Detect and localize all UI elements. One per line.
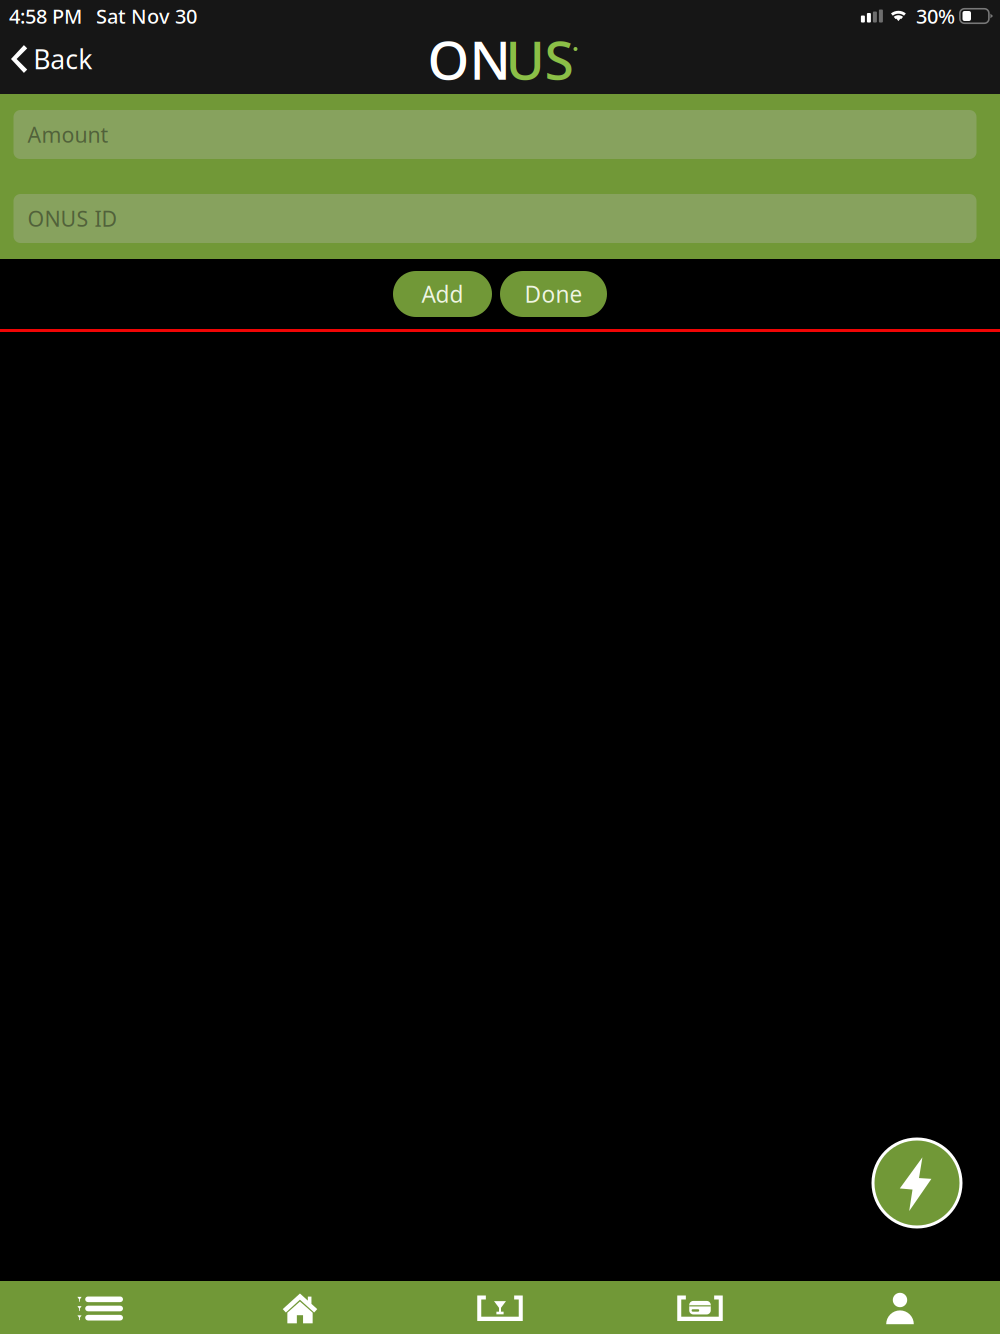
staticText: 30% — [916, 3, 955, 29]
button[interactable]: Drinks — [400, 1281, 600, 1334]
staticText: Add — [421, 279, 463, 309]
button[interactable]: Payments — [600, 1281, 800, 1334]
button[interactable]: Orders — [0, 1281, 200, 1334]
staticText: Done — [524, 279, 582, 309]
staticText: ON — [427, 24, 510, 94]
staticText: ONUS ID — [27, 204, 117, 233]
button[interactable]: Amount — [13, 110, 976, 159]
staticText: Back — [33, 41, 92, 77]
staticText: 4:58 PM — [9, 3, 82, 29]
button[interactable]: Add — [393, 271, 492, 317]
button[interactable]: Done — [500, 271, 607, 317]
button[interactable]: Home — [200, 1281, 400, 1334]
staticText: Amount — [27, 120, 108, 149]
staticText: US — [505, 24, 573, 94]
button[interactable]: ONUS ID — [13, 194, 976, 243]
button[interactable]: Quick action — [872, 1138, 962, 1228]
button[interactable]: Profile — [800, 1281, 1000, 1334]
button[interactable]: Back — [0, 32, 108, 94]
staticText: Sat Nov 30 — [96, 3, 197, 29]
